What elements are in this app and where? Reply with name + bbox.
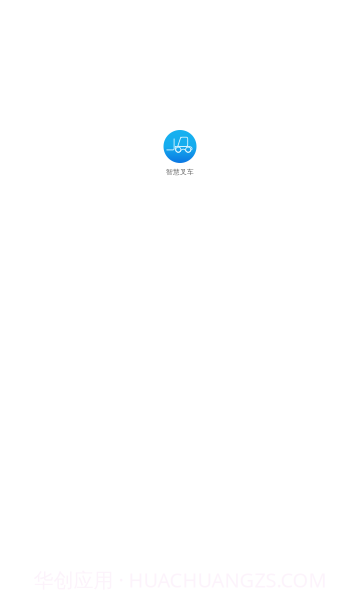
staticText: 智慧叉车 (166, 168, 194, 176)
button[interactable]: 智慧叉车 (163, 130, 196, 176)
staticText: 华创应用 · HUACHUANGZS.COM (33, 566, 326, 593)
